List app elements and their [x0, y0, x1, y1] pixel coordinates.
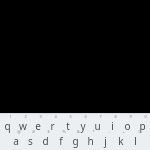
- staticText: j: [104, 134, 107, 148]
- button[interactable]: $: [38, 129, 53, 144]
- staticText: (: [138, 129, 140, 134]
- button[interactable]: z: [23, 144, 38, 150]
- button[interactable]: #: [23, 129, 38, 144]
- staticText: 5: [69, 114, 72, 119]
- staticText: 9: [129, 114, 132, 119]
- staticText: 8: [114, 114, 117, 119]
- button[interactable]: 1: [0, 114, 15, 129]
- staticText: 6: [84, 114, 87, 119]
- button[interactable]: c: [53, 144, 68, 150]
- staticText: i: [111, 119, 114, 133]
- button[interactable]: 2: [15, 114, 30, 129]
- button[interactable]: *: [83, 129, 98, 144]
- staticText: &: [77, 129, 80, 134]
- staticText: +: [122, 129, 125, 134]
- staticText: h: [87, 134, 94, 148]
- staticText: 2: [24, 114, 27, 119]
- staticText: #: [32, 129, 35, 134]
- button[interactable]: b: [83, 144, 98, 150]
- staticText: @: [17, 129, 21, 134]
- button[interactable]: 5: [60, 114, 75, 129]
- button[interactable]: 7: [90, 114, 105, 129]
- staticText: 4: [54, 114, 57, 119]
- button[interactable]: n: [98, 144, 113, 150]
- staticText: 1: [9, 114, 12, 119]
- staticText: o: [124, 119, 131, 133]
- staticText: y: [80, 119, 86, 133]
- button[interactable]: &: [68, 129, 83, 144]
- button[interactable]: 8: [105, 114, 120, 129]
- staticText: p: [139, 119, 146, 133]
- staticText: a: [13, 134, 19, 148]
- staticText: k: [118, 134, 124, 148]
- staticText: u: [94, 119, 101, 133]
- button[interactable]: @: [8, 129, 23, 144]
- staticText: *: [92, 129, 95, 134]
- button[interactable]: +: [113, 129, 128, 144]
- button[interactable]: %: [53, 129, 68, 144]
- staticText: s: [28, 134, 33, 148]
- staticText: -: [108, 129, 110, 134]
- button[interactable]: 6: [75, 114, 90, 129]
- button[interactable]: m: [113, 144, 128, 150]
- staticText: q: [4, 119, 11, 133]
- staticText: g: [72, 134, 79, 148]
- staticText: l: [134, 134, 137, 148]
- button[interactable]: 9: [120, 114, 135, 129]
- button[interactable]: 3: [30, 114, 45, 129]
- staticText: $: [47, 129, 50, 134]
- staticText: t: [66, 119, 70, 133]
- staticText: 7: [99, 114, 102, 119]
- staticText: %: [62, 129, 66, 134]
- button[interactable]: -: [98, 129, 113, 144]
- staticText: 0: [144, 114, 147, 119]
- staticText: e: [35, 119, 41, 133]
- staticText: d: [42, 134, 49, 148]
- button[interactable]: x: [38, 144, 53, 150]
- staticText: 3: [39, 114, 42, 119]
- button[interactable]: (: [128, 129, 143, 144]
- staticText: f: [59, 134, 63, 148]
- button[interactable]: v: [68, 144, 83, 150]
- staticText: w: [19, 119, 27, 133]
- button[interactable]: 4: [45, 114, 60, 129]
- button[interactable]: 0: [135, 114, 150, 129]
- staticText: r: [50, 119, 55, 133]
